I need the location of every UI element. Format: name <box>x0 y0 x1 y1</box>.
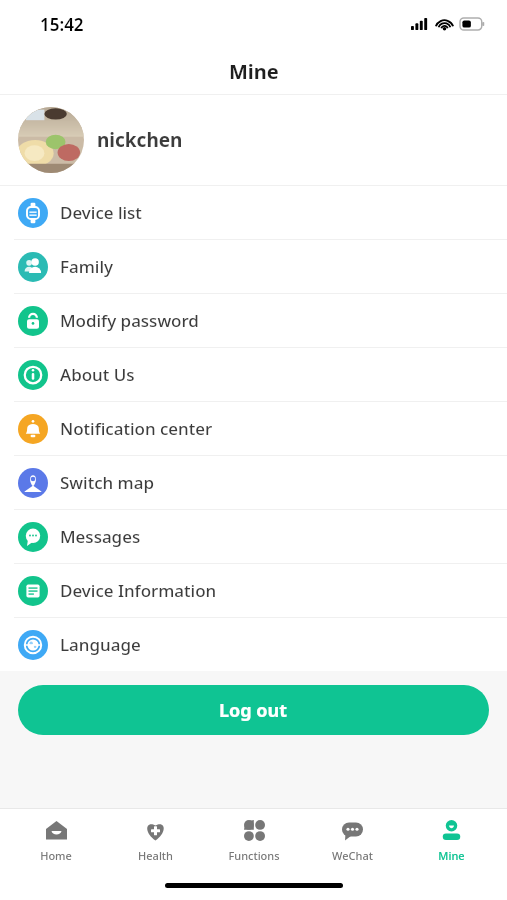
button[interactable]: Modify password <box>0 294 507 347</box>
staticText: Device list <box>60 201 142 224</box>
staticText: Family <box>60 255 113 278</box>
staticText: Health <box>138 848 173 863</box>
button[interactable]: About Us <box>0 348 507 401</box>
button[interactable]: Functions <box>211 818 297 863</box>
staticText: Device Information <box>60 579 217 602</box>
button[interactable]: Notification center <box>0 402 507 455</box>
staticText: Log out <box>219 698 288 723</box>
staticText: WeChat <box>332 848 373 863</box>
button[interactable]: Family <box>0 240 507 293</box>
staticText: Mine <box>438 848 465 863</box>
staticText: Home <box>40 848 72 863</box>
staticText: Language <box>60 633 141 656</box>
button[interactable]: Language <box>0 618 507 671</box>
staticText: nickchen <box>97 127 183 153</box>
staticText: Modify password <box>60 309 199 332</box>
button[interactable]: nickchen <box>0 95 507 185</box>
button[interactable]: Mine <box>408 818 494 863</box>
button[interactable]: Device Information <box>0 564 507 617</box>
staticText: Switch map <box>60 471 154 494</box>
staticText: Notification center <box>60 417 213 440</box>
button[interactable]: Health <box>112 818 198 863</box>
button[interactable]: Home <box>13 818 99 863</box>
button[interactable]: Log out <box>18 685 489 735</box>
button[interactable]: Messages <box>0 510 507 563</box>
button[interactable]: Switch map <box>0 456 507 509</box>
button[interactable]: Device list <box>0 186 507 239</box>
staticText: About Us <box>60 363 135 386</box>
button[interactable]: WeChat <box>309 818 395 863</box>
staticText: Messages <box>60 525 141 548</box>
staticText: Functions <box>228 848 280 863</box>
staticText: 15:42 <box>40 13 84 36</box>
staticText: Mine <box>229 58 279 85</box>
